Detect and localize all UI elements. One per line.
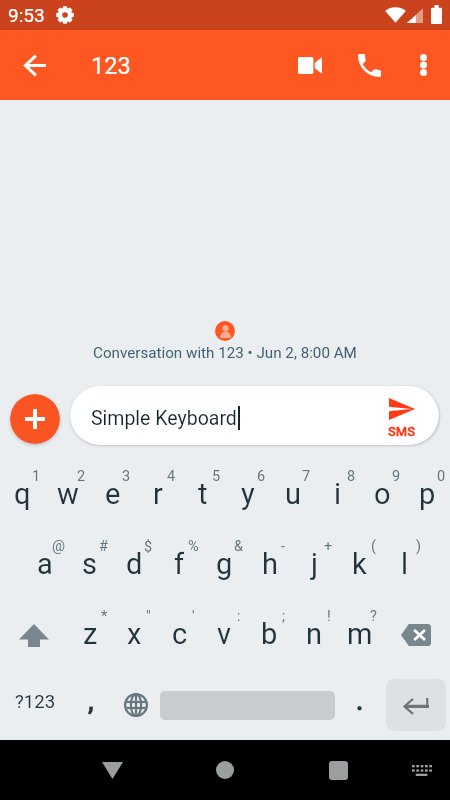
button[interactable]: Switch language: [113, 670, 158, 740]
button[interactable]: Enter: [386, 679, 446, 731]
staticText: @: [52, 538, 66, 555]
button[interactable]: Switch keyboard: [398, 746, 446, 794]
staticText: $: [144, 538, 153, 555]
staticText: *: [101, 608, 108, 625]
staticText: SMS: [388, 424, 416, 439]
button[interactable]: r: [135, 460, 180, 530]
staticText: +: [324, 538, 333, 555]
button[interactable]: x: [112, 600, 157, 670]
button[interactable]: Recent apps: [314, 746, 362, 794]
button[interactable]: t: [180, 460, 225, 530]
button[interactable]: v: [202, 600, 247, 670]
staticText: i: [334, 477, 342, 511]
button[interactable]: Video call: [282, 37, 338, 93]
button[interactable]: Add attachment: [10, 394, 60, 444]
staticText: o: [374, 477, 391, 511]
button[interactable]: ,: [68, 670, 113, 740]
button[interactable]: z: [68, 600, 112, 670]
staticText: f: [174, 547, 185, 581]
button[interactable]: m: [337, 600, 382, 670]
staticText: :: [237, 608, 241, 625]
staticText: ,: [88, 686, 94, 716]
button[interactable]: i: [315, 460, 360, 530]
button[interactable]: Home: [201, 746, 249, 794]
staticText: 2: [77, 468, 86, 485]
staticText: 5: [212, 468, 221, 485]
staticText: 9:53: [8, 4, 45, 26]
button[interactable]: ?123: [0, 670, 68, 740]
button[interactable]: y: [225, 460, 270, 530]
staticText: n: [306, 617, 323, 651]
staticText: l: [401, 547, 409, 581]
button[interactable]: Send SMS: [367, 389, 437, 445]
staticText: w: [57, 477, 79, 511]
button[interactable]: Navigate up: [7, 37, 63, 93]
staticText: ): [416, 538, 422, 555]
button[interactable]: Space: [158, 670, 337, 740]
staticText: c: [172, 617, 188, 651]
staticText: 1: [32, 468, 41, 485]
button[interactable]: u: [270, 460, 315, 530]
staticText: b: [261, 617, 278, 651]
staticText: j: [311, 547, 318, 581]
button[interactable]: k: [337, 530, 382, 600]
staticText: 3: [122, 468, 131, 485]
button[interactable]: e: [90, 460, 135, 530]
staticText: p: [419, 477, 436, 511]
staticText: u: [285, 477, 301, 511]
staticText: 7: [302, 468, 311, 485]
button[interactable]: c: [157, 600, 202, 670]
button[interactable]: l: [382, 530, 427, 600]
button[interactable]: s: [67, 530, 112, 600]
button[interactable]: Shift: [0, 600, 68, 670]
staticText: (: [371, 538, 376, 555]
staticText: 4: [167, 468, 176, 485]
staticText: &: [234, 538, 244, 555]
button[interactable]: w: [45, 460, 90, 530]
staticText: !: [327, 608, 331, 625]
button[interactable]: o: [360, 460, 405, 530]
staticText: z: [83, 617, 98, 651]
staticText: ;: [282, 608, 286, 625]
staticText: a: [37, 547, 53, 581]
staticText: t: [198, 477, 208, 511]
staticText: 9: [392, 468, 401, 485]
button[interactable]: b: [247, 600, 292, 670]
staticText: ?: [370, 608, 377, 625]
staticText: Simple Keyboard: [91, 407, 237, 430]
staticText: ?123: [15, 691, 56, 713]
staticText: ': [192, 608, 195, 625]
staticText: ": [146, 608, 151, 625]
button[interactable]: j: [292, 530, 337, 600]
button[interactable]: d: [112, 530, 157, 600]
staticText: k: [352, 547, 367, 581]
staticText: -: [281, 538, 286, 555]
button[interactable]: a: [23, 530, 67, 600]
staticText: v: [217, 617, 232, 651]
button[interactable]: .: [337, 670, 382, 740]
button[interactable]: f: [157, 530, 202, 600]
button[interactable]: Delete: [382, 600, 450, 670]
button[interactable]: More options: [397, 39, 449, 91]
button[interactable]: n: [292, 600, 337, 670]
staticText: q: [14, 477, 31, 511]
staticText: e: [105, 477, 121, 511]
staticText: s: [82, 547, 97, 581]
staticText: x: [127, 617, 142, 651]
button[interactable]: p: [405, 460, 450, 530]
staticText: 123: [91, 52, 131, 80]
button[interactable]: h: [247, 530, 292, 600]
staticText: m: [347, 617, 373, 651]
button[interactable]: g: [202, 530, 247, 600]
button[interactable]: Back: [88, 746, 136, 794]
staticText: 8: [347, 468, 356, 485]
staticText: r: [153, 477, 163, 511]
staticText: g: [216, 547, 233, 581]
staticText: d: [126, 547, 143, 581]
button[interactable]: q: [0, 460, 45, 530]
staticText: h: [262, 547, 278, 581]
staticText: .: [356, 686, 364, 716]
staticText: Conversation with 123 • Jun 2, 8:00 AM: [93, 344, 357, 362]
staticText: y: [241, 477, 255, 511]
button[interactable]: Call: [341, 37, 397, 93]
